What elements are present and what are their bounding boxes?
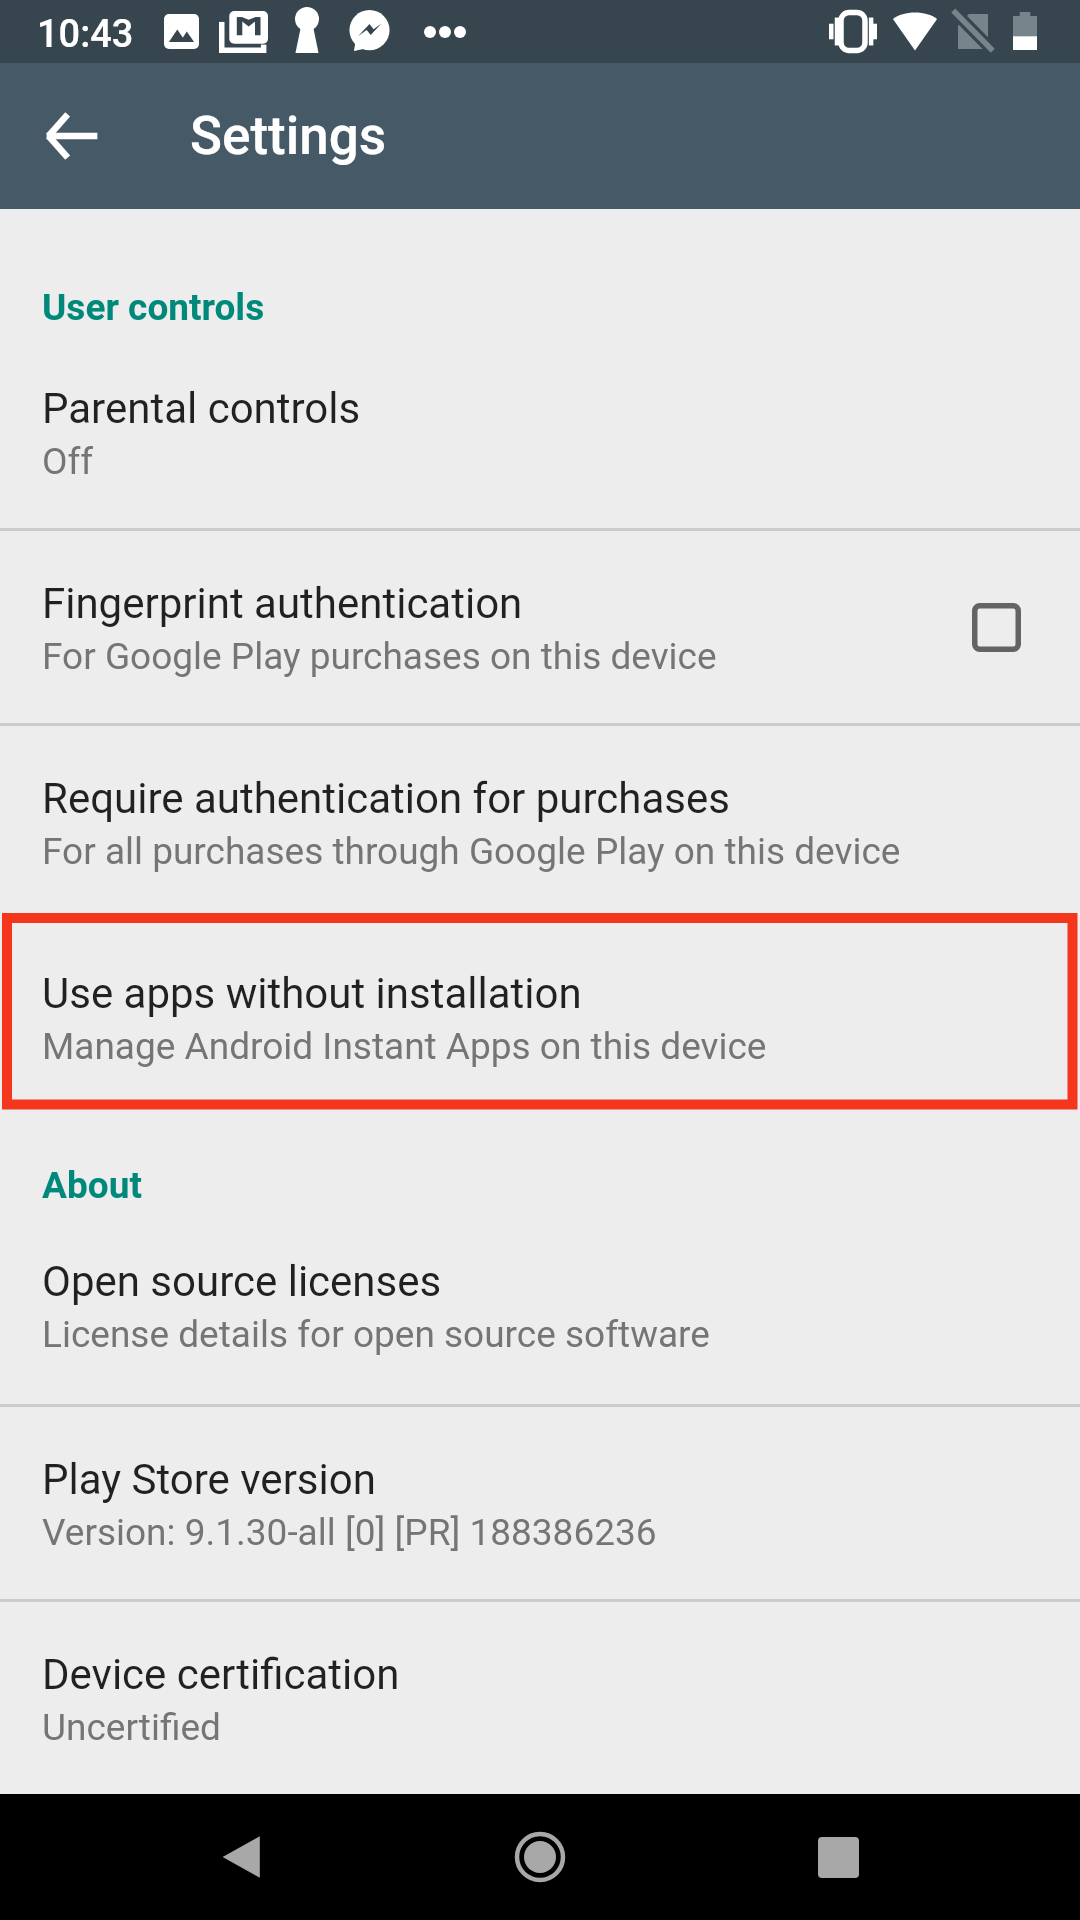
- staticText: Use apps without installation: [42, 969, 582, 1018]
- button[interactable]: Fingerprint authentication checkbox: [934, 565, 1058, 689]
- staticText: Play Store version: [42, 1455, 376, 1504]
- button[interactable]: Recent apps: [783, 1802, 893, 1912]
- staticText: For all purchases through Google Play on…: [42, 830, 901, 873]
- staticText: Parental controls: [42, 384, 361, 433]
- button[interactable]: Require authentication for purchases: [0, 724, 1080, 919]
- button[interactable]: Open source licenses: [0, 1207, 1080, 1402]
- button[interactable]: Device certification: [0, 1600, 1080, 1795]
- staticText: Open source licenses: [42, 1257, 442, 1306]
- staticText: Require authentication for purchases: [42, 774, 730, 823]
- staticText: Uncertified: [42, 1706, 221, 1749]
- staticText: About: [42, 1164, 142, 1207]
- button[interactable]: Back: [186, 1802, 296, 1912]
- staticText: Fingerprint authentication: [42, 579, 523, 628]
- button[interactable]: Home: [485, 1802, 595, 1912]
- button[interactable]: Play Store version: [0, 1405, 1080, 1600]
- staticText: For Google Play purchases on this device: [42, 635, 717, 678]
- staticText: License details for open source software: [42, 1313, 710, 1356]
- staticText: 10:43: [37, 12, 134, 57]
- button[interactable]: Fingerprint authentication: [0, 529, 1080, 724]
- staticText: User controls: [42, 286, 265, 329]
- staticText: Device certification: [42, 1650, 400, 1699]
- staticText: Version: 9.1.30-all [0] [PR] 188386236: [42, 1511, 657, 1554]
- button[interactable]: Navigate up: [24, 88, 120, 184]
- button[interactable]: Parental controls: [0, 334, 1080, 529]
- button[interactable]: Use apps without installation: [0, 919, 1080, 1114]
- staticText: Manage Android Instant Apps on this devi…: [42, 1025, 767, 1068]
- staticText: Off: [42, 440, 94, 483]
- staticText: Settings: [190, 105, 387, 167]
